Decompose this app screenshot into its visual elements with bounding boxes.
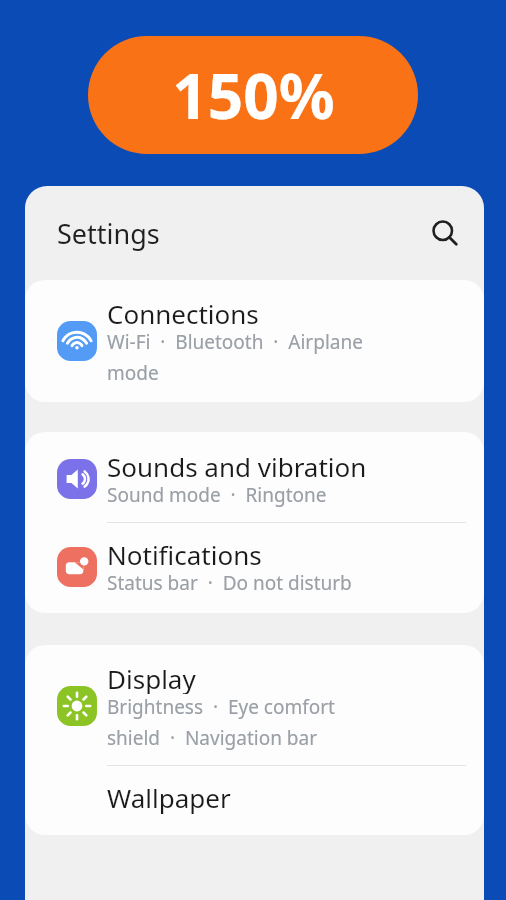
staticText: Status bar · Do not disturb <box>107 570 352 596</box>
button[interactable]: Connections <box>25 280 484 402</box>
button[interactable]: 150% <box>88 36 418 154</box>
button[interactable]: Search <box>419 207 471 259</box>
button[interactable]: Wallpaper <box>25 766 484 835</box>
staticText: Connections <box>107 296 259 329</box>
button[interactable]: Sounds and vibration <box>25 432 484 522</box>
staticText: Brightness · Eye comfort shield · Naviga… <box>107 694 335 751</box>
staticText: Sounds and vibration <box>107 449 367 482</box>
staticText: Settings <box>57 215 160 252</box>
button[interactable]: Display <box>25 645 484 765</box>
button[interactable]: Notifications <box>25 523 484 613</box>
staticText: Notifications <box>107 537 262 570</box>
staticText: 150% <box>172 53 335 137</box>
staticText: Wi-Fi · Bluetooth · Airplane mode <box>107 329 363 386</box>
staticText: Sound mode · Ringtone <box>107 482 327 508</box>
staticText: Display <box>107 661 196 694</box>
staticText: Wallpaper <box>107 780 231 815</box>
